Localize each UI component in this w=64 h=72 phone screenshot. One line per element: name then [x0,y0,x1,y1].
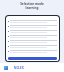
staticText: Selection mode learning [0,2,64,10]
staticText: NCLEX [14,66,24,70]
